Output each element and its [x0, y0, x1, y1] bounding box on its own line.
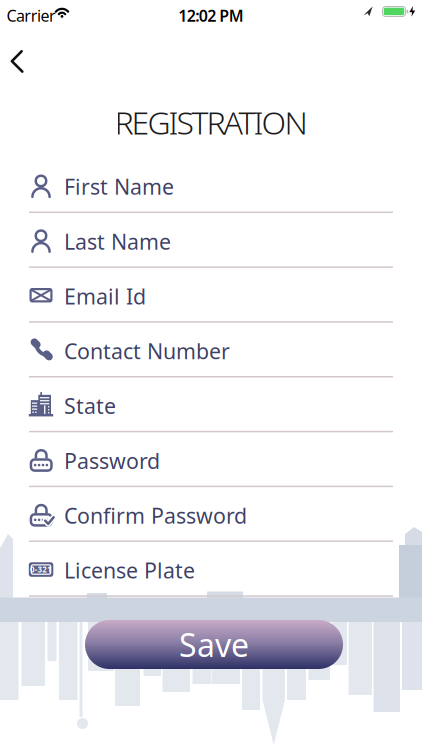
button[interactable]: Last Name [29, 216, 393, 268]
staticText: Password [64, 446, 160, 475]
button[interactable]: Email Id [29, 271, 393, 323]
staticText: Email Id [64, 282, 146, 310]
button[interactable]: Contact Number [29, 325, 393, 377]
staticText: REGISTRATION [114, 101, 307, 143]
button[interactable]: State [29, 380, 393, 432]
staticText: Carrier [6, 5, 56, 26]
staticText: 12:02 PM [178, 5, 244, 26]
button[interactable]: Save [85, 620, 343, 669]
button[interactable]: 0-321 [29, 545, 393, 597]
staticText: License Plate [64, 556, 195, 584]
button[interactable]: Back [0, 41, 44, 83]
staticText: 0-321 [30, 564, 52, 575]
staticText: Last Name [64, 227, 171, 255]
button[interactable]: Password [29, 435, 393, 487]
staticText: Confirm Password [64, 501, 247, 530]
staticText: Save [179, 623, 249, 666]
staticText: Contact Number [64, 337, 230, 365]
button[interactable]: Confirm Password [29, 490, 393, 542]
staticText: State [64, 392, 116, 420]
staticText: First Name [64, 172, 174, 201]
button[interactable]: First Name [29, 161, 393, 213]
